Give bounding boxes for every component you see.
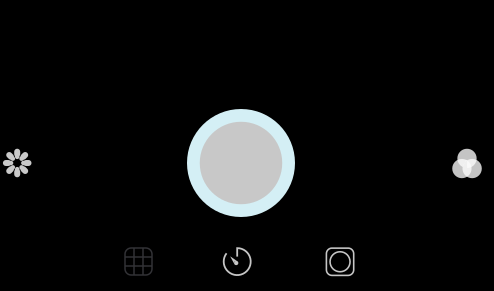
button[interactable]: Filters bbox=[451, 146, 485, 180]
button[interactable]: Take Picture bbox=[187, 109, 295, 217]
button[interactable]: Exposure bbox=[0, 145, 34, 181]
button[interactable]: Camera Mode bbox=[323, 244, 357, 278]
button[interactable]: Timer bbox=[220, 245, 254, 279]
button[interactable]: Grid bbox=[121, 244, 155, 278]
